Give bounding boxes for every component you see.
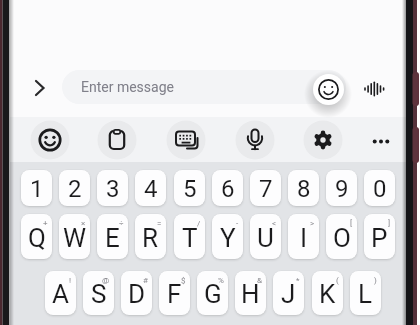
staticText: P — [371, 223, 388, 253]
button[interactable] — [34, 79, 46, 97]
button[interactable]: U — [250, 214, 281, 259]
staticText: ] — [388, 219, 391, 228]
button[interactable] — [364, 81, 385, 97]
button[interactable]: G — [197, 271, 228, 315]
staticText: % — [218, 276, 224, 285]
button[interactable]: L — [350, 271, 381, 315]
staticText: @ — [102, 276, 110, 285]
staticText: E — [105, 223, 120, 253]
staticText: 4 — [144, 175, 158, 203]
button[interactable]: H — [235, 271, 266, 315]
staticText: 5 — [183, 175, 197, 203]
staticText: R — [142, 223, 159, 253]
staticText: ) — [374, 276, 377, 285]
button[interactable] — [362, 121, 400, 159]
staticText: I — [300, 223, 308, 253]
staticText: 9 — [335, 175, 349, 203]
staticText: U — [257, 223, 274, 253]
staticText: H — [241, 279, 260, 309]
staticText: < — [272, 219, 277, 228]
button[interactable] — [304, 121, 342, 159]
staticText: Enter message — [81, 79, 174, 95]
button[interactable]: E — [97, 214, 128, 259]
button[interactable]: 4 — [135, 170, 166, 206]
button[interactable] — [31, 121, 69, 159]
button[interactable]: 8 — [288, 170, 319, 206]
staticText: 0 — [373, 175, 387, 203]
button[interactable]: F — [159, 271, 190, 315]
staticText: 1 — [30, 175, 44, 203]
staticText: D — [128, 279, 146, 309]
button[interactable]: Q — [21, 214, 52, 259]
button[interactable]: 2 — [59, 170, 90, 206]
staticText: T — [182, 223, 198, 253]
button[interactable]: J — [273, 271, 304, 315]
staticText: [ — [350, 219, 353, 228]
button[interactable]: R — [135, 214, 166, 259]
staticText: O — [333, 223, 351, 253]
staticText: Q — [28, 223, 46, 253]
button[interactable] — [313, 74, 344, 105]
staticText: Y — [220, 223, 236, 253]
button[interactable] — [98, 121, 136, 159]
staticText: 3 — [106, 175, 120, 203]
button[interactable]: Enter message — [62, 70, 346, 104]
button[interactable]: W — [59, 214, 90, 259]
button[interactable]: 9 — [326, 170, 357, 206]
staticText: - — [236, 219, 239, 228]
button[interactable]: K — [312, 271, 343, 315]
staticText: 2 — [68, 175, 82, 203]
staticText: J — [281, 279, 296, 309]
staticText: ! — [69, 276, 72, 285]
staticText: K — [319, 279, 336, 309]
button[interactable] — [236, 121, 274, 159]
staticText: * — [296, 276, 300, 285]
staticText: 7 — [259, 175, 273, 203]
button[interactable]: I — [288, 214, 319, 259]
button[interactable]: D — [121, 271, 152, 315]
button[interactable]: Y — [212, 214, 243, 259]
button[interactable]: 1 — [21, 170, 52, 206]
button[interactable]: 6 — [212, 170, 243, 206]
staticText: 6 — [221, 175, 235, 203]
staticText: ( — [336, 276, 339, 285]
button[interactable]: 0 — [364, 170, 395, 206]
staticText: > — [310, 219, 315, 228]
staticText: L — [358, 279, 373, 309]
staticText: × — [81, 219, 86, 228]
button[interactable]: A — [45, 271, 76, 315]
staticText: / — [197, 219, 201, 228]
staticText: 8 — [297, 175, 311, 203]
button[interactable]: 7 — [250, 170, 281, 206]
staticText: = — [157, 219, 162, 228]
button[interactable]: T — [174, 214, 205, 259]
staticText: + — [43, 219, 48, 228]
button[interactable]: O — [326, 214, 357, 259]
staticText: & — [257, 276, 262, 285]
staticText: # — [143, 276, 148, 285]
button[interactable]: S — [83, 271, 114, 315]
staticText: ÷ — [119, 219, 124, 228]
staticText: W — [63, 223, 87, 253]
button[interactable]: 3 — [97, 170, 128, 206]
staticText: G — [204, 279, 222, 309]
staticText: F — [167, 279, 182, 309]
button[interactable]: P — [364, 214, 395, 259]
button[interactable] — [167, 121, 205, 159]
staticText: S — [91, 279, 107, 309]
button[interactable]: 5 — [174, 170, 205, 206]
staticText: $ — [181, 276, 186, 285]
staticText: A — [52, 279, 69, 309]
